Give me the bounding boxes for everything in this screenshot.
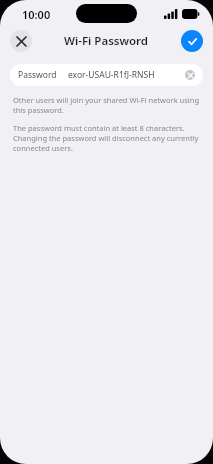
- staticText: The password must contain at least 8 cha…: [13, 123, 200, 153]
- staticText: exor-USAU-R1fJ-RNSH: [68, 69, 185, 81]
- staticText: 10:00: [22, 7, 51, 22]
- button[interactable]: Done: [181, 30, 203, 52]
- staticText: Wi-Fi Password: [64, 33, 149, 49]
- button[interactable]: Close: [10, 30, 32, 52]
- button[interactable]: Clear text: [185, 70, 195, 80]
- staticText: Other users will join your shared Wi-Fi …: [13, 95, 200, 115]
- staticText: Password: [18, 69, 57, 81]
- button[interactable]: Password: [10, 64, 203, 86]
